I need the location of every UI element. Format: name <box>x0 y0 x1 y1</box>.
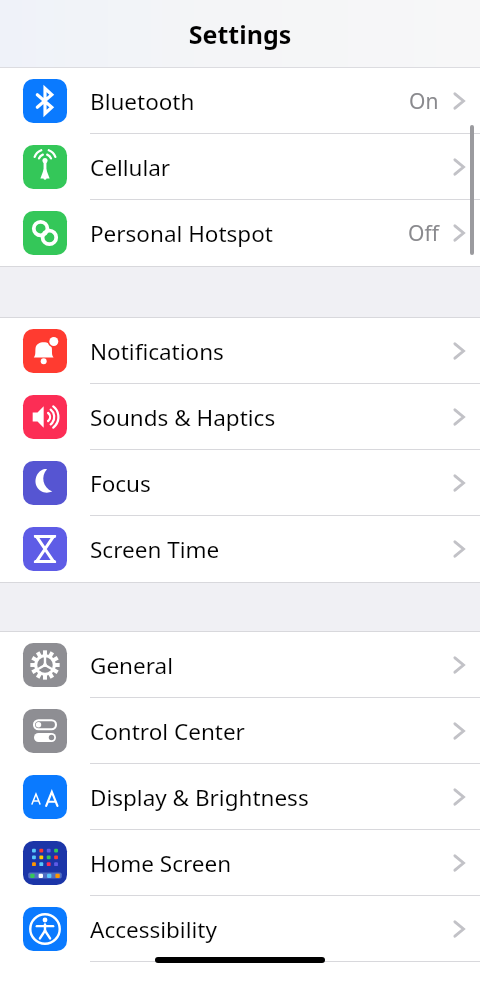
staticText: On <box>409 87 439 116</box>
staticText: Accessibility <box>90 914 448 945</box>
button[interactable]: Notifications <box>0 318 480 384</box>
button[interactable]: Sounds & Haptics <box>0 384 480 450</box>
staticText: General <box>90 650 448 681</box>
button[interactable]: Accessibility <box>0 896 480 962</box>
button[interactable]: Focus <box>0 450 480 516</box>
staticText: Off <box>408 219 439 248</box>
staticText: Screen Time <box>90 534 448 565</box>
staticText: Control Center <box>90 716 448 747</box>
staticText: Notifications <box>90 336 448 367</box>
staticText: Cellular <box>90 152 448 183</box>
button[interactable]: Personal Hotspot <box>0 200 480 266</box>
staticText: Personal Hotspot <box>90 218 408 249</box>
button[interactable]: Home Screen <box>0 830 480 896</box>
button[interactable]: Bluetooth <box>0 68 480 134</box>
button[interactable]: Cellular <box>0 134 480 200</box>
staticText: Sounds & Haptics <box>90 402 448 433</box>
button[interactable]: Screen Time <box>0 516 480 582</box>
staticText: Display & Brightness <box>90 782 448 813</box>
staticText: Settings <box>0 17 480 51</box>
button[interactable]: General <box>0 632 480 698</box>
staticText: Focus <box>90 468 448 499</box>
button[interactable]: Control Center <box>0 698 480 764</box>
button[interactable]: Display & Brightness <box>0 764 480 830</box>
staticText: Home Screen <box>90 848 448 879</box>
staticText: Bluetooth <box>90 86 409 117</box>
